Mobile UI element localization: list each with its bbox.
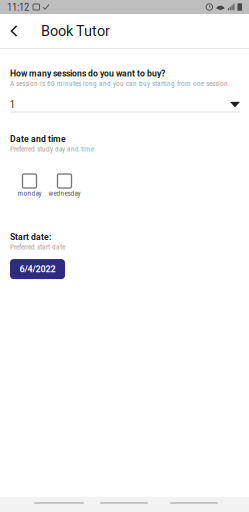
staticText: Book Tutor: [41, 23, 110, 39]
staticText: 1: [10, 99, 15, 110]
button[interactable]: Back: [2, 14, 26, 48]
staticText: 11:12: [7, 1, 29, 13]
staticText: Start date:: [10, 232, 51, 242]
button[interactable]: 1: [10, 97, 240, 112]
staticText: Preferred start date: [10, 243, 65, 251]
staticText: Preferred study day and time: [10, 145, 94, 153]
staticText: How many sessions do you want to buy?: [10, 68, 165, 79]
button[interactable]: monday: [12, 174, 47, 198]
staticText: A session is 60 minutes long and you can…: [10, 79, 230, 88]
staticText: wednesday: [48, 189, 80, 198]
staticText: 6/4/2022: [19, 264, 55, 274]
button[interactable]: wednesday: [47, 174, 82, 198]
button[interactable]: 6/4/2022: [10, 259, 65, 279]
staticText: Date and time: [10, 134, 66, 144]
staticText: monday: [17, 189, 41, 198]
